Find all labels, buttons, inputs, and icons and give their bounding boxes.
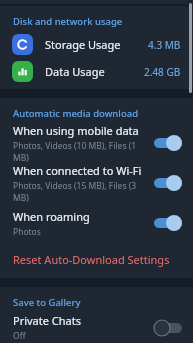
button[interactable]: Data Usage bbox=[0, 58, 193, 85]
staticText: Private Chats bbox=[13, 313, 81, 328]
button[interactable]: When connected to Wi-Fi bbox=[0, 163, 193, 203]
staticText: When roaming bbox=[13, 209, 90, 224]
button[interactable]: Private Chats bbox=[151, 316, 185, 340]
staticText: Photos, Videos (10 MB), Files (1 MB) bbox=[13, 140, 151, 163]
staticText: Automatic media download bbox=[13, 107, 139, 120]
button[interactable]: When using mobile data bbox=[0, 123, 193, 163]
button[interactable]: When roaming bbox=[0, 203, 193, 243]
staticText: When using mobile data bbox=[13, 123, 139, 138]
staticText: 2.48 GB bbox=[144, 65, 181, 79]
button[interactable]: When connected to Wi-Fi bbox=[151, 171, 185, 195]
staticText: Data Usage bbox=[45, 64, 144, 79]
staticText: 4.3 MB bbox=[148, 38, 181, 52]
staticText: Photos bbox=[13, 226, 41, 238]
staticText: Photos, Videos (15 MB), Files (3 MB) bbox=[13, 180, 151, 203]
staticText: Disk and network usage bbox=[13, 15, 123, 28]
button[interactable]: Private Chats bbox=[0, 312, 193, 343]
staticText: Save to Gallery bbox=[13, 296, 81, 309]
button[interactable]: When using mobile data bbox=[151, 131, 185, 155]
staticText: When connected to Wi-Fi bbox=[13, 163, 142, 178]
button[interactable]: Storage Usage bbox=[0, 31, 193, 58]
staticText: Storage Usage bbox=[45, 37, 148, 52]
staticText: Reset Auto-Download Settings bbox=[13, 252, 170, 267]
staticText: Off bbox=[13, 330, 26, 342]
button[interactable]: When roaming bbox=[151, 211, 185, 235]
button[interactable]: Reset Auto-Download Settings bbox=[0, 243, 193, 275]
